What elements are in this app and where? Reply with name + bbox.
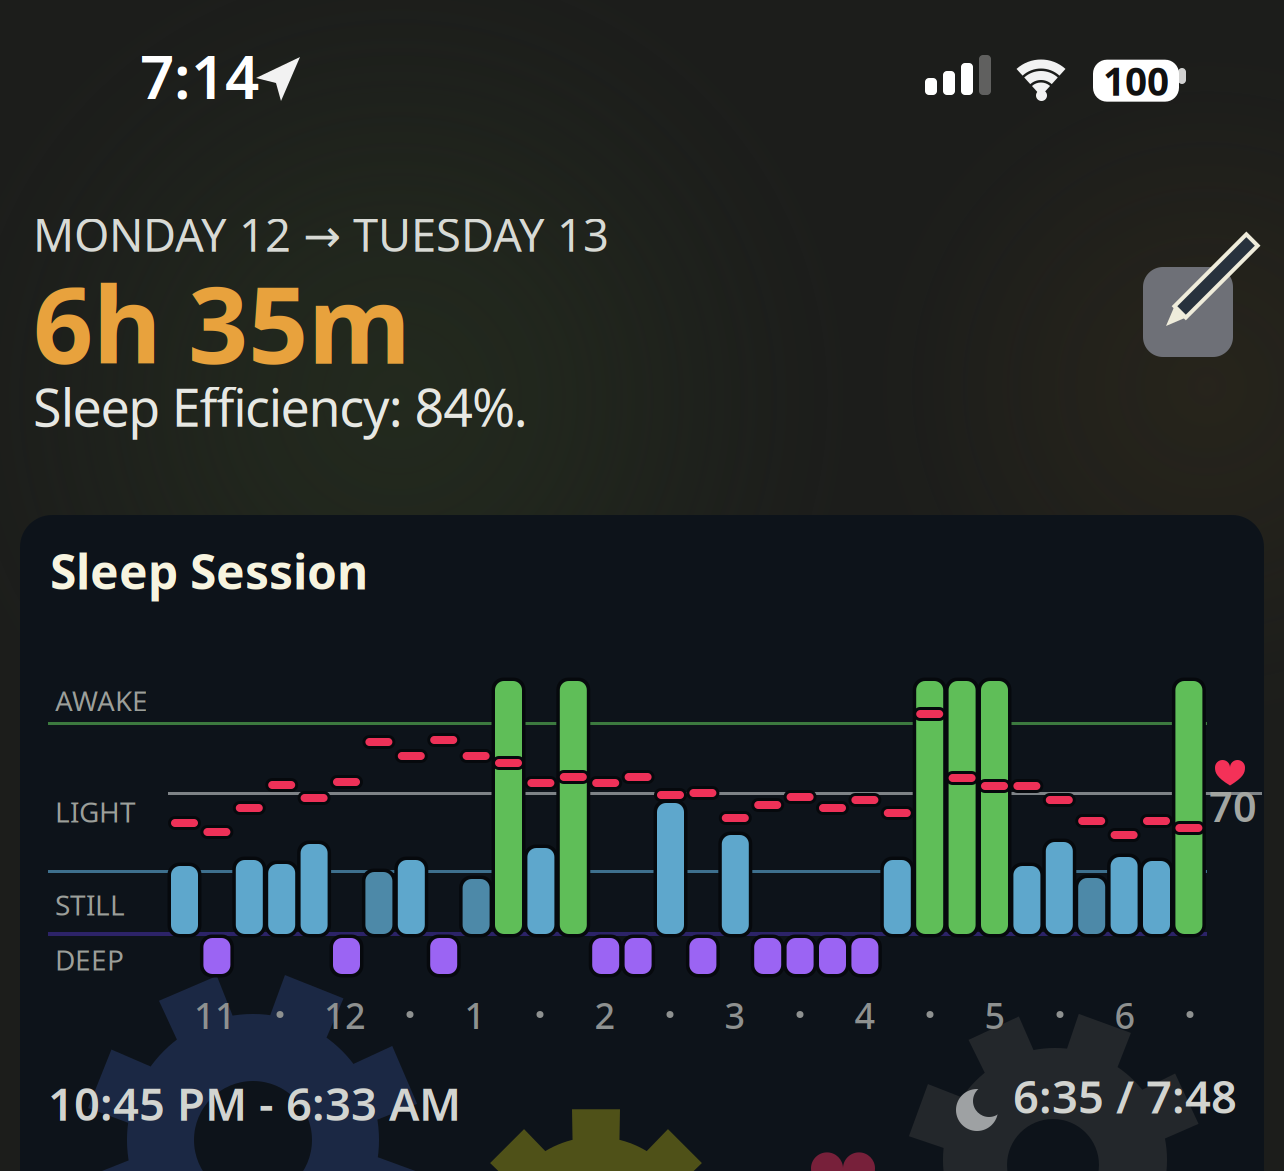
staticText: 6 (1114, 991, 1135, 1039)
staticText: 3 (724, 991, 745, 1039)
staticText: 2 (594, 991, 615, 1039)
staticText: 4 (854, 991, 875, 1039)
staticText: 11 (194, 991, 236, 1039)
staticText: 7:14 (140, 36, 259, 116)
staticText: 100 (1103, 55, 1169, 106)
staticText: STILL (55, 886, 125, 923)
staticText: Sleep Efficiency: 84%. (33, 372, 528, 441)
staticText: 12 (324, 991, 366, 1039)
staticText: AWAKE (55, 682, 148, 719)
staticText: MONDAY 12 → TUESDAY 13 (33, 204, 609, 264)
staticText: 6h 35m (33, 253, 411, 393)
staticText: 70 (1209, 779, 1257, 833)
staticText: DEEP (55, 941, 124, 978)
staticText: 1 (464, 991, 485, 1039)
staticText: 6:35 / 7:48 (1013, 1066, 1237, 1126)
staticText: Sleep Session (50, 539, 368, 603)
staticText: 10:45 PM - 6:33 AM (48, 1073, 461, 1133)
staticText: LIGHT (55, 793, 136, 830)
staticText: 5 (984, 991, 1005, 1039)
